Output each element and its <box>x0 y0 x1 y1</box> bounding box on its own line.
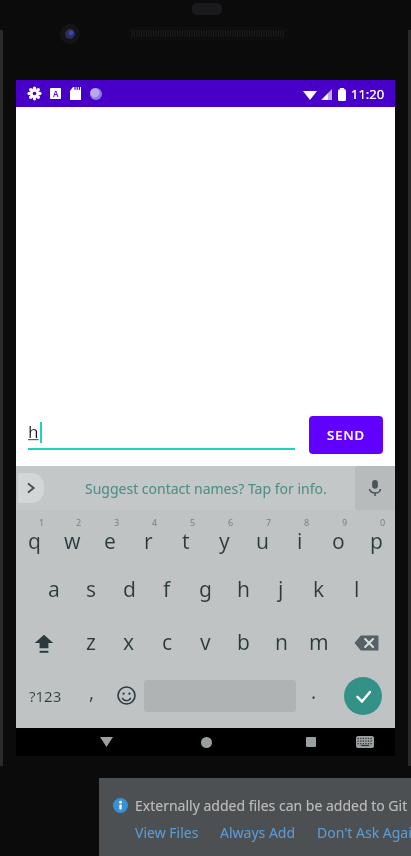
staticText: n <box>275 628 288 657</box>
staticText: f <box>163 575 171 604</box>
button[interactable]: ?123 <box>16 669 74 722</box>
staticText: k <box>313 575 325 604</box>
staticText: h <box>28 420 39 443</box>
button[interactable]: 5 <box>167 510 205 563</box>
staticText: a <box>48 575 60 604</box>
button[interactable]: n <box>262 616 300 669</box>
button[interactable]: 2 <box>53 510 91 563</box>
button[interactable]: b <box>224 616 262 669</box>
button[interactable]: Always Add <box>220 823 296 842</box>
button[interactable]: z <box>72 616 110 669</box>
button[interactable]: Recents <box>291 728 331 756</box>
button[interactable]: Home <box>186 728 226 756</box>
staticText: 6 <box>228 516 234 528</box>
button[interactable]: Shift <box>16 616 72 669</box>
staticText: Suggest contact names? Tap for info. <box>85 479 327 498</box>
staticText: y <box>219 527 230 556</box>
staticText: z <box>86 628 96 657</box>
staticText: 11:20 <box>351 85 385 103</box>
button[interactable]: Back <box>86 728 126 756</box>
staticText: c <box>162 628 173 657</box>
staticText: A <box>53 88 59 99</box>
staticText: 4 <box>152 516 158 528</box>
button[interactable]: g <box>186 563 224 616</box>
button[interactable]: View Files <box>135 823 199 842</box>
staticText: p <box>370 527 383 556</box>
staticText: l <box>354 575 360 604</box>
button[interactable]: 8 <box>281 510 319 563</box>
staticText: ?123 <box>29 686 62 706</box>
button[interactable]: 3 <box>91 510 129 563</box>
staticText: 5 <box>190 516 196 528</box>
staticText: SEND <box>327 426 365 444</box>
staticText: 0 <box>380 516 386 528</box>
staticText: . <box>311 679 317 705</box>
staticText: s <box>86 575 97 604</box>
button[interactable]: Emoji <box>109 669 144 722</box>
button[interactable]: Voice input <box>355 466 395 510</box>
staticText: b <box>237 628 250 657</box>
staticText: g <box>199 575 212 604</box>
staticText: 9 <box>342 516 348 528</box>
button[interactable]: j <box>262 563 300 616</box>
button[interactable]: h <box>224 563 262 616</box>
button[interactable]: Hide keyboard <box>345 728 385 756</box>
staticText: i <box>297 527 303 556</box>
button[interactable]: l <box>338 563 376 616</box>
staticText: r <box>144 527 153 556</box>
staticText: h <box>237 575 250 604</box>
button[interactable]: a <box>35 563 72 616</box>
staticText: x <box>123 628 135 657</box>
button[interactable]: Expand suggestions <box>18 473 44 503</box>
button[interactable]: Don't Ask Again <box>317 823 411 842</box>
button[interactable]: m <box>300 616 338 669</box>
staticText: w <box>64 527 81 556</box>
staticText: v <box>200 628 211 657</box>
button[interactable]: 9 <box>319 510 357 563</box>
button[interactable]: x <box>110 616 148 669</box>
button[interactable]: 6 <box>205 510 243 563</box>
button[interactable]: , <box>74 669 109 722</box>
button[interactable]: 7 <box>243 510 281 563</box>
button[interactable]: 4 <box>129 510 167 563</box>
button[interactable]: k <box>300 563 338 616</box>
staticText: t <box>182 527 190 556</box>
button[interactable]: s <box>72 563 110 616</box>
button[interactable]: f <box>148 563 186 616</box>
button[interactable]: 1 <box>16 510 53 563</box>
staticText: m <box>309 628 329 657</box>
staticText: 1 <box>39 516 45 528</box>
staticText: u <box>256 527 269 556</box>
button[interactable]: v <box>186 616 224 669</box>
staticText: 2 <box>76 516 82 528</box>
staticText: , <box>89 679 95 705</box>
button[interactable]: Enter <box>344 677 382 715</box>
button[interactable]: c <box>148 616 186 669</box>
button[interactable]: Suggest contact names? Tap for info. <box>85 479 327 498</box>
staticText: d <box>123 575 136 604</box>
button[interactable]: d <box>110 563 148 616</box>
button[interactable]: 0 <box>357 510 395 563</box>
staticText: j <box>278 575 284 604</box>
button[interactable]: SEND <box>309 416 383 454</box>
staticText: o <box>332 527 345 556</box>
staticText: q <box>28 527 41 556</box>
staticText: 8 <box>304 516 310 528</box>
button[interactable]: Backspace <box>338 616 395 669</box>
staticText: 7 <box>266 516 272 528</box>
button[interactable]: . <box>296 669 331 722</box>
staticText: Externally added files can be added to G… <box>135 796 408 815</box>
staticText: 3 <box>114 516 120 528</box>
staticText: e <box>104 527 116 556</box>
